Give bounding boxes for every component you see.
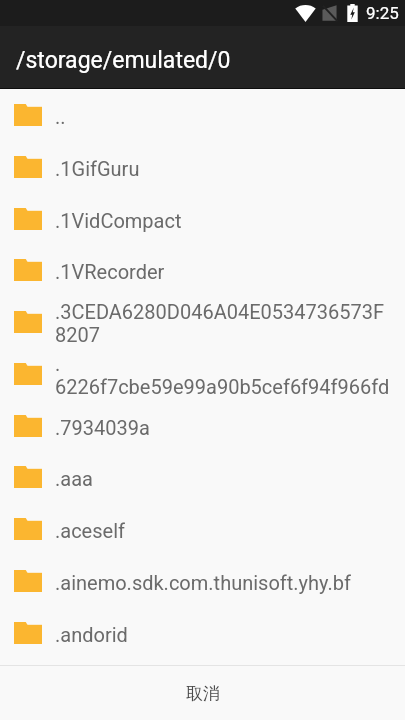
button[interactable]: .7934039a <box>0 400 405 452</box>
staticText: .andorid <box>55 623 128 646</box>
button[interactable]: .1GifGuru <box>0 141 405 193</box>
button[interactable]: .. <box>0 89 405 141</box>
button[interactable]: . 6226f7cbe59e99a90b5cef6f94f966fd <box>0 348 405 400</box>
button[interactable]: 取消 <box>0 666 405 720</box>
staticText: 9:25 <box>366 3 399 23</box>
button[interactable]: .aaa <box>0 451 405 503</box>
button[interactable]: .1VidCompact <box>0 193 405 245</box>
staticText: .ainemo.sdk.com.thunisoft.yhy.bf <box>55 571 351 594</box>
staticText: 取消 <box>186 683 220 704</box>
button[interactable]: .3CEDA6280D046A04E0534736573F8207 <box>0 296 405 348</box>
staticText: .7934039a <box>55 416 150 439</box>
staticText: .1GifGuru <box>55 157 140 180</box>
button[interactable]: .andorid <box>0 607 405 659</box>
staticText: /storage/emulated/0 <box>16 47 231 74</box>
button[interactable]: .ainemo.sdk.com.thunisoft.yhy.bf <box>0 555 405 607</box>
staticText: .aceself <box>55 519 125 542</box>
staticText: .3CEDA6280D046A04E0534736573F8207 <box>55 300 390 346</box>
button[interactable]: .1VRecorder <box>0 244 405 296</box>
button[interactable]: .aceself <box>0 503 405 555</box>
staticText: .1VidCompact <box>55 209 182 232</box>
staticText: .. <box>55 105 66 128</box>
staticText: .aaa <box>55 467 93 490</box>
staticText: . 6226f7cbe59e99a90b5cef6f94f966fd <box>55 352 390 398</box>
staticText: .1VRecorder <box>55 260 165 283</box>
